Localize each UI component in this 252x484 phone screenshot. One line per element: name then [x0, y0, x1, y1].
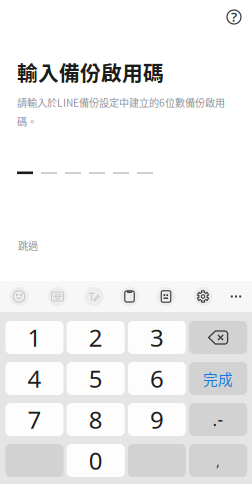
button[interactable]: 完成 — [189, 362, 247, 395]
staticText: 跳過 — [18, 238, 38, 253]
button[interactable]: 跳過 — [12, 232, 44, 259]
button[interactable]: Clipboard — [116, 283, 142, 309]
button[interactable]: 5 — [67, 362, 125, 395]
button[interactable]: 6 — [128, 362, 186, 395]
staticText: , — [216, 451, 220, 470]
staticText: 0 — [89, 445, 103, 476]
staticText: 5 — [89, 363, 103, 394]
button[interactable]: Text style — [44, 283, 70, 309]
staticText: 8 — [89, 404, 103, 435]
button[interactable]: 8 — [67, 403, 125, 436]
staticText: 4 — [27, 363, 41, 394]
button[interactable]: Period dash — [189, 403, 247, 436]
button[interactable]: Handwriting — [81, 283, 107, 309]
button[interactable]: Help — [219, 2, 249, 32]
button[interactable]: 2 — [67, 321, 125, 354]
button[interactable]: 9 — [128, 403, 186, 436]
button[interactable]: 7 — [5, 403, 63, 436]
staticText: ? — [231, 8, 237, 25]
button[interactable]: 1 — [5, 321, 63, 354]
staticText: 9 — [150, 404, 164, 435]
staticText: 請輸入於LINE備份設定中建立的6位數備份啟用碼。 — [17, 95, 225, 129]
staticText: 3 — [150, 322, 164, 353]
staticText: .- — [213, 408, 224, 431]
button[interactable]: 4 — [5, 362, 63, 395]
button[interactable]: 0 — [67, 444, 125, 477]
button[interactable]: Emoji — [6, 283, 32, 309]
staticText: 完成 — [203, 368, 233, 389]
staticText: 6 — [150, 363, 164, 394]
button[interactable]: Backspace — [189, 321, 247, 354]
button[interactable]: Text extract — [153, 283, 179, 309]
staticText: 1 — [27, 322, 41, 353]
button[interactable]: Comma — [189, 444, 247, 477]
staticText: 2 — [89, 322, 103, 353]
button[interactable]: Settings — [190, 283, 216, 309]
button[interactable]: 3 — [128, 321, 186, 354]
staticText: 輸入備份啟用碼 — [17, 57, 164, 87]
staticText: 7 — [27, 404, 41, 435]
button[interactable]: More — [223, 283, 249, 309]
